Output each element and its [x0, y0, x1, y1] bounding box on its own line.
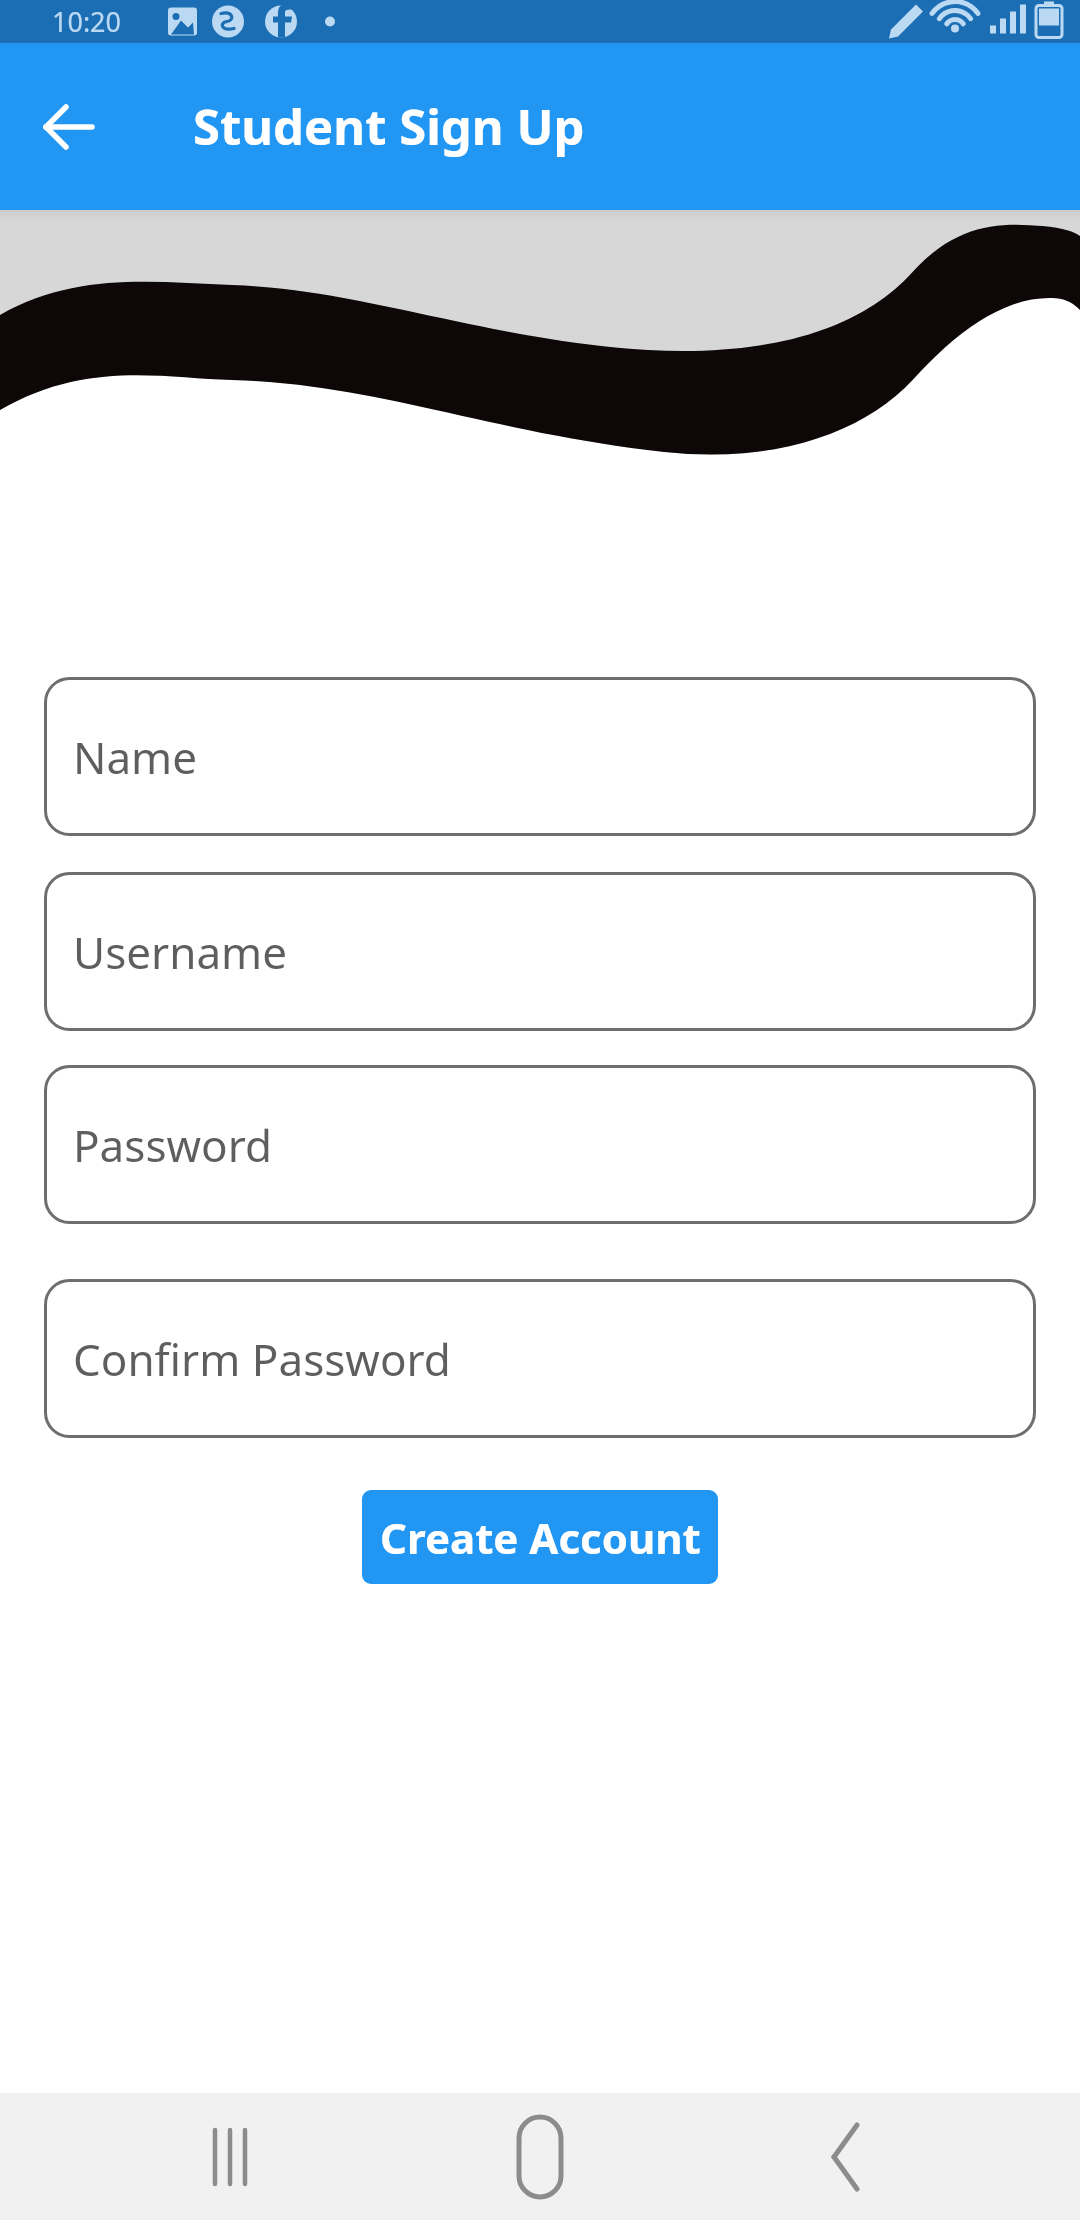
staticText: Password: [73, 1115, 273, 1175]
staticText: Create Account: [380, 1509, 701, 1566]
button[interactable]: Name: [44, 677, 1036, 836]
button[interactable]: Home: [480, 2097, 600, 2217]
button[interactable]: Back: [785, 2097, 905, 2217]
staticText: Username: [73, 922, 288, 982]
button[interactable]: Username: [44, 872, 1036, 1031]
button[interactable]: Back: [30, 82, 120, 172]
staticText: Student Sign Up: [193, 93, 585, 160]
button[interactable]: Password: [44, 1065, 1036, 1224]
button[interactable]: Create Account: [362, 1490, 718, 1584]
staticText: Name: [73, 727, 198, 787]
staticText: 10:20: [52, 3, 122, 40]
button[interactable]: Recents: [175, 2097, 295, 2217]
button[interactable]: Confirm Password: [44, 1279, 1036, 1438]
staticText: Confirm Password: [73, 1329, 451, 1389]
